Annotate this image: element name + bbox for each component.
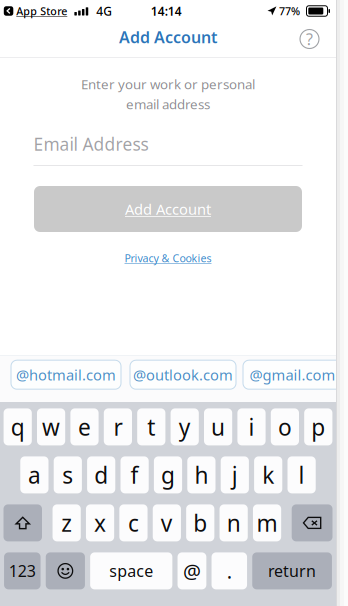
staticText: w [42,412,60,442]
button[interactable]: Back to App Store [4,4,67,18]
button[interactable]: y [171,408,199,445]
staticText: r [113,412,122,442]
staticText: Email Address [33,132,148,155]
button[interactable]: @outlook.com [130,360,236,389]
button[interactable]: z [53,504,81,541]
staticText: n [227,508,241,538]
button[interactable]: @gmail.com [243,360,342,389]
staticText: 123 [9,560,36,581]
button[interactable]: q [4,408,32,445]
button[interactable]: b [186,504,214,541]
button[interactable]: Shift [3,504,42,541]
staticText: email address [126,95,210,113]
staticText: Enter your work or personal [81,75,255,93]
button[interactable]: a [20,456,48,493]
staticText: Add Account [125,199,211,219]
staticText: z [61,508,72,538]
button[interactable]: h [187,456,215,493]
button[interactable]: return [252,552,332,589]
button[interactable]: w [37,408,65,445]
staticText: . [227,558,232,584]
staticText: x [94,508,106,538]
button[interactable]: g [154,456,182,493]
button[interactable]: l [287,456,316,493]
button[interactable]: Emoji [46,552,85,589]
staticText: 77% [279,4,300,18]
staticText: a [28,460,41,490]
button[interactable]: Delete [292,504,332,541]
staticText: return [268,560,316,581]
button[interactable]: m [253,504,281,541]
button[interactable]: c [119,504,148,541]
staticText: u [211,412,225,442]
button[interactable]: k [254,456,282,493]
staticText: y [179,412,191,442]
staticText: g [161,460,175,490]
staticText: v [161,508,173,538]
button[interactable]: v [153,504,181,541]
staticText: m [257,508,278,538]
button[interactable]: Numbers and symbols [4,552,40,589]
button[interactable]: j [221,456,249,493]
button[interactable]: x [86,504,114,541]
button[interactable]: Privacy & Cookies [124,251,211,265]
staticText: j [232,460,238,490]
button[interactable]: s [54,456,82,493]
staticText: l [299,460,305,490]
button[interactable]: p [304,408,332,445]
staticText: @hotmail.com [16,365,116,384]
button[interactable]: f [120,456,149,493]
staticText: ? [306,28,313,50]
staticText: d [94,460,108,490]
button[interactable]: o [271,408,299,445]
staticText: 4G [96,3,112,19]
staticText: t [147,412,155,442]
button[interactable]: @hotmail.com [11,360,121,389]
staticText: c [128,508,139,538]
button[interactable]: Add Account [34,186,302,232]
staticText: o [278,412,292,442]
staticText: f [131,460,139,490]
button[interactable]: i [237,408,266,445]
button[interactable]: space [90,552,172,589]
staticText: Add Account [119,26,217,48]
staticText: space [109,560,153,581]
staticText: q [11,412,25,442]
staticText: b [193,508,207,538]
staticText: Privacy & Cookies [124,251,211,265]
button[interactable]: t [137,408,165,445]
button[interactable]: at sign [177,552,206,589]
staticText: k [262,460,274,490]
staticText: e [78,412,91,442]
staticText: @ [183,558,201,584]
staticText: h [194,460,208,490]
staticText: App Store [16,4,67,18]
button[interactable]: n [220,504,248,541]
button[interactable]: u [204,408,232,445]
button[interactable]: r [104,408,132,445]
staticText: p [311,412,325,442]
button[interactable]: e [70,408,99,445]
staticText: @outlook.com [133,365,233,384]
staticText: i [248,412,254,442]
staticText: 14:14 [151,3,182,19]
button[interactable]: Help [300,29,319,48]
staticText: s [62,460,73,490]
staticText: @gmail.com [249,365,335,384]
button[interactable]: d [87,456,115,493]
button[interactable]: period [211,552,247,589]
